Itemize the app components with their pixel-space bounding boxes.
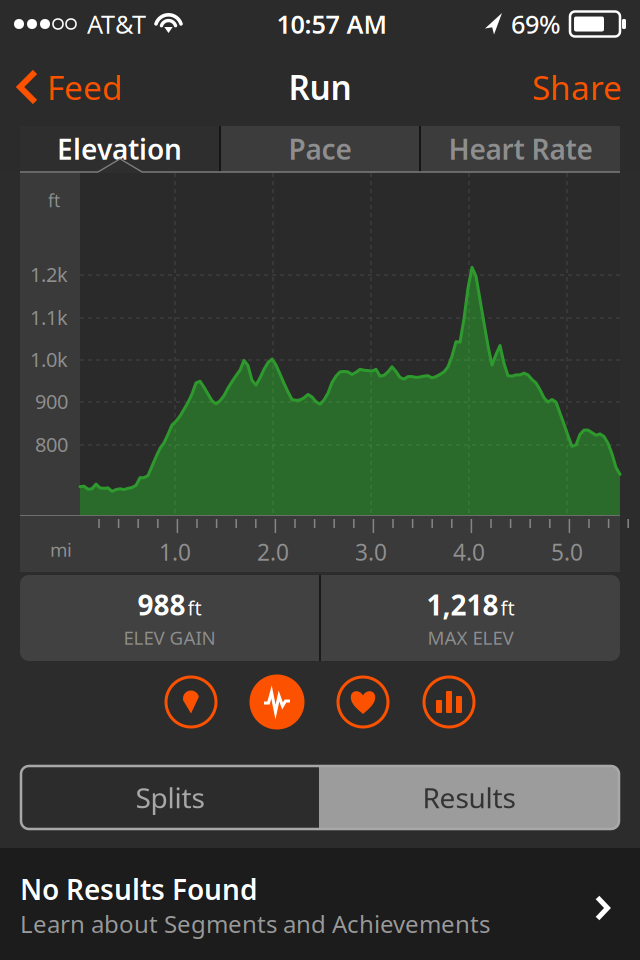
- staticText: MAX ELEV: [427, 625, 513, 650]
- staticText: Elevation: [57, 130, 182, 168]
- staticText: Results: [422, 779, 515, 816]
- button[interactable]: Analysis: [234, 661, 320, 743]
- button[interactable]: Splits: [406, 661, 492, 743]
- staticText: Heart Rate: [448, 130, 592, 168]
- staticText: 3.0: [355, 537, 387, 567]
- staticText: Run: [288, 65, 351, 109]
- staticText: 4.0: [453, 537, 485, 567]
- staticText: Learn about Segments and Achievements: [20, 908, 490, 940]
- button[interactable]: Map: [148, 661, 234, 743]
- staticText: Feed: [47, 65, 123, 109]
- staticText: ELEV GAIN: [123, 625, 215, 650]
- staticText: AT&T: [87, 7, 146, 41]
- staticText: ft: [500, 594, 514, 621]
- button[interactable]: Feed: [0, 48, 137, 126]
- staticText: Pace: [288, 130, 351, 168]
- button[interactable]: Elevation: [20, 126, 219, 172]
- staticText: 900: [35, 388, 68, 415]
- staticText: 1.0k: [30, 346, 68, 373]
- staticText: mi: [50, 537, 72, 562]
- staticText: Splits: [135, 779, 204, 816]
- staticText: Share: [532, 65, 622, 109]
- staticText: 69%: [511, 7, 561, 41]
- staticText: 800: [35, 431, 68, 458]
- staticText: 1.1k: [30, 304, 68, 331]
- staticText: 5.0: [551, 537, 583, 567]
- button[interactable]: Splits: [21, 766, 319, 829]
- button[interactable]: Results: [319, 766, 619, 829]
- staticText: No Results Found: [20, 870, 258, 908]
- staticText: 1.2k: [30, 261, 68, 288]
- staticText: 2.0: [257, 537, 289, 567]
- staticText: 10:57 AM: [276, 7, 387, 41]
- button[interactable]: No Results Found: [0, 848, 640, 960]
- button[interactable]: Pace: [221, 126, 419, 172]
- button[interactable]: Heart rate: [320, 661, 406, 743]
- button[interactable]: Share: [514, 48, 640, 126]
- staticText: 1,218: [426, 586, 498, 623]
- staticText: 1.0: [159, 537, 191, 567]
- staticText: ft: [48, 189, 60, 212]
- staticText: ft: [187, 594, 201, 621]
- button[interactable]: Heart Rate: [421, 126, 620, 172]
- staticText: 988: [137, 586, 185, 623]
